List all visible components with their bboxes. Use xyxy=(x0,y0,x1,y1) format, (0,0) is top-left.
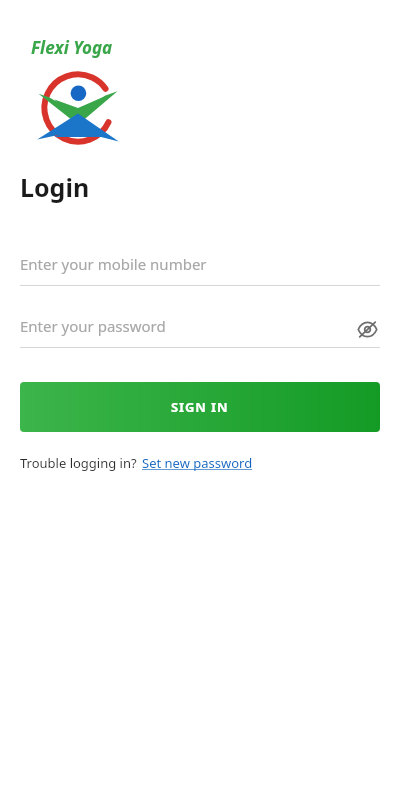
staticText: Login xyxy=(20,170,90,204)
staticText: Enter your mobile number xyxy=(20,254,207,274)
staticText: Enter your password xyxy=(20,316,166,336)
staticText: Flexi Yoga xyxy=(31,36,113,59)
staticText: SIGN IN xyxy=(171,398,229,416)
button[interactable]: Show password xyxy=(354,316,380,342)
staticText: Set new password xyxy=(142,454,253,472)
button[interactable]: Enter your password xyxy=(20,316,380,348)
staticText: Trouble logging in? xyxy=(20,454,137,472)
button[interactable]: SIGN IN xyxy=(20,382,380,432)
button[interactable]: Set new password xyxy=(142,454,253,472)
button[interactable]: Enter your mobile number xyxy=(20,254,380,286)
